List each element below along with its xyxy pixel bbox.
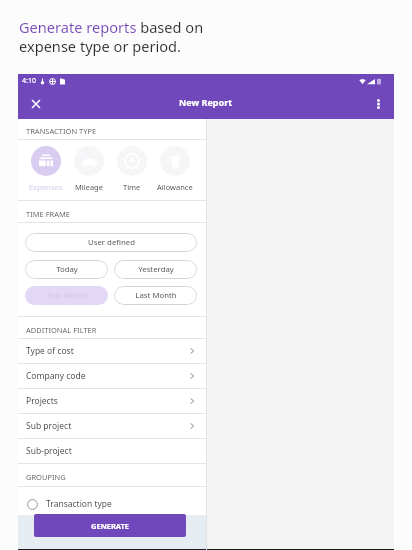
button[interactable]: Close [26, 94, 45, 113]
staticText: Expenses [29, 182, 63, 192]
staticText: Sub-project [26, 445, 72, 457]
button[interactable] [18, 512, 206, 537]
button[interactable]: User defined [25, 233, 197, 252]
button[interactable]: GENERATE [34, 514, 186, 537]
staticText: Type of cost [26, 345, 74, 357]
button[interactable]: Type of cost [18, 339, 206, 363]
staticText: Transaction type [46, 498, 112, 510]
staticText: Projects [26, 395, 58, 407]
button[interactable]: Mileage [66, 140, 112, 200]
staticText: Yesterday [138, 264, 174, 275]
staticText: ADDITIONAL FILTER [26, 325, 97, 335]
staticText: New Report [179, 96, 233, 108]
staticText: GENERATE [91, 521, 130, 531]
button[interactable]: Last Month [114, 286, 197, 305]
staticText: GROUPING [26, 472, 66, 482]
button[interactable]: Allowance [152, 140, 198, 200]
staticText: Today [56, 264, 78, 275]
button[interactable]: This Month [25, 286, 108, 305]
button[interactable]: Yesterday [114, 260, 197, 279]
button[interactable]: Time [109, 140, 155, 200]
staticText: 4:10 [22, 76, 36, 86]
staticText: User defined [88, 237, 135, 248]
staticText: Allowance [157, 182, 193, 192]
staticText: This Month [46, 290, 88, 301]
button[interactable]: Expenses [23, 140, 69, 200]
staticText: Time [123, 182, 141, 192]
staticText: Mileage [75, 182, 103, 192]
button[interactable]: Company code [18, 364, 206, 388]
button[interactable]: Transaction type [18, 487, 206, 512]
button[interactable]: More options [369, 95, 387, 113]
staticText: Last Month [135, 290, 177, 301]
button[interactable]: Sub-project [18, 439, 206, 463]
staticText: Sub project [26, 420, 72, 432]
staticText: TRANSACTION TYPE [26, 126, 97, 136]
button[interactable]: Projects [18, 389, 206, 413]
staticText: TIME FRAME [26, 209, 70, 219]
button[interactable]: Today [25, 260, 108, 279]
staticText: Generate reports based on expense type o… [19, 17, 204, 56]
staticText: Company code [26, 370, 86, 382]
button[interactable]: Sub project [18, 414, 206, 438]
